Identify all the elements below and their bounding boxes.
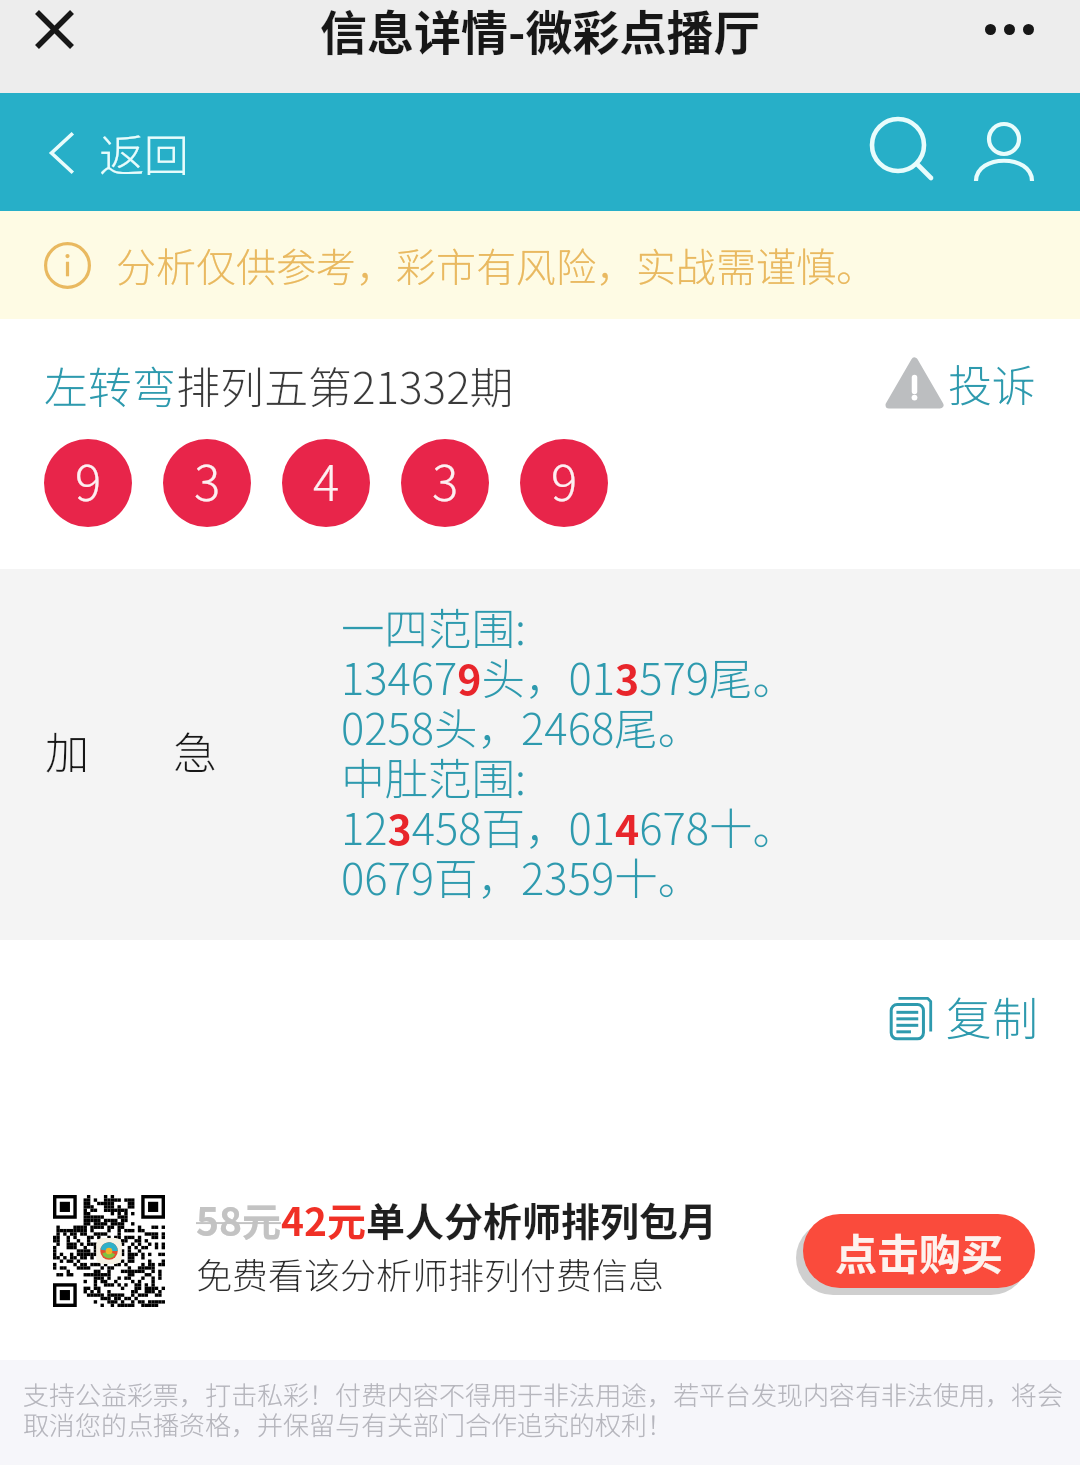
button[interactable]: Close — [18, 0, 90, 65]
button[interactable]: 9 — [520, 439, 608, 527]
staticText: 返回 — [99, 120, 190, 185]
button[interactable]: 投诉 — [888, 351, 1036, 415]
staticText: 一四范围: 134679头，013579尾。 0258头，2468尾。 中肚范围… — [341, 595, 797, 908]
staticText: 加 — [45, 718, 89, 782]
staticText: 3 — [432, 444, 459, 515]
staticText: 9 — [551, 444, 578, 515]
staticText: 左转弯排列五第21332期 — [44, 353, 514, 417]
staticText: 4 — [313, 444, 340, 515]
button[interactable]: Copy — [886, 983, 1038, 1050]
staticText: 投诉 — [948, 351, 1036, 415]
staticText: 58元42元单人分析师排列包月 — [196, 1191, 718, 1247]
button[interactable]: 返回 — [50, 120, 190, 185]
staticText: 支持公益彩票，打击私彩！付费内容不得用于非法用途，若平台发现内容有非法使用，将会… — [23, 1375, 1072, 1443]
button[interactable]: Profile — [954, 102, 1054, 202]
staticText: 复制 — [946, 983, 1038, 1050]
staticText: 免费看该分析师排列付费信息 — [196, 1247, 665, 1299]
button[interactable]: More options — [985, 24, 1034, 35]
staticText: 急 — [173, 718, 217, 782]
staticText: 分析仅供参考，彩市有风险，实战需谨慎。 — [116, 236, 876, 294]
staticText: 信息详情-微彩点播厅 — [320, 0, 761, 63]
button[interactable]: 3 — [401, 439, 489, 527]
button[interactable]: 3 — [163, 439, 251, 527]
button[interactable]: Search — [854, 102, 954, 202]
button[interactable]: 4 — [282, 439, 370, 527]
button[interactable]: 9 — [44, 439, 132, 527]
staticText: 3 — [194, 444, 221, 515]
button[interactable]: 点击购买 — [803, 1214, 1035, 1288]
staticText: 9 — [75, 444, 102, 515]
staticText: 点击购买 — [835, 1221, 1004, 1282]
